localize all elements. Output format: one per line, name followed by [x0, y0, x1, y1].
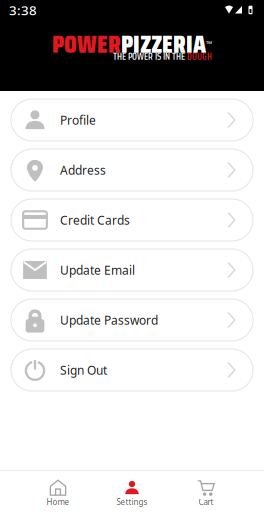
staticText: Home: [46, 497, 69, 507]
button[interactable]: Address: [11, 149, 253, 191]
staticText: Update Email: [60, 262, 135, 278]
button[interactable]: Settings: [95, 471, 169, 512]
button[interactable]: Sign Out: [11, 349, 253, 391]
staticText: PIZZERIA: [121, 24, 206, 64]
staticText: Profile: [60, 112, 96, 128]
button[interactable]: Update Password: [11, 299, 253, 341]
button[interactable]: Cart: [169, 471, 243, 512]
staticText: Settings: [116, 497, 147, 507]
staticText: Address: [60, 162, 106, 178]
button[interactable]: Update Email: [11, 249, 253, 291]
button[interactable]: Home: [21, 471, 95, 512]
staticText: ™: [206, 39, 212, 49]
staticText: THE POWER IS IN THE: [113, 49, 187, 64]
staticText: Update Password: [60, 312, 158, 328]
staticText: POWER: [52, 24, 121, 64]
staticText: 3:38: [9, 1, 37, 19]
button[interactable]: Credit Cards: [11, 199, 253, 241]
button[interactable]: Profile: [11, 99, 253, 141]
staticText: Credit Cards: [60, 212, 130, 228]
staticText: DOUGH: [187, 49, 212, 64]
staticText: Cart: [198, 497, 213, 507]
staticText: Sign Out: [60, 362, 107, 378]
